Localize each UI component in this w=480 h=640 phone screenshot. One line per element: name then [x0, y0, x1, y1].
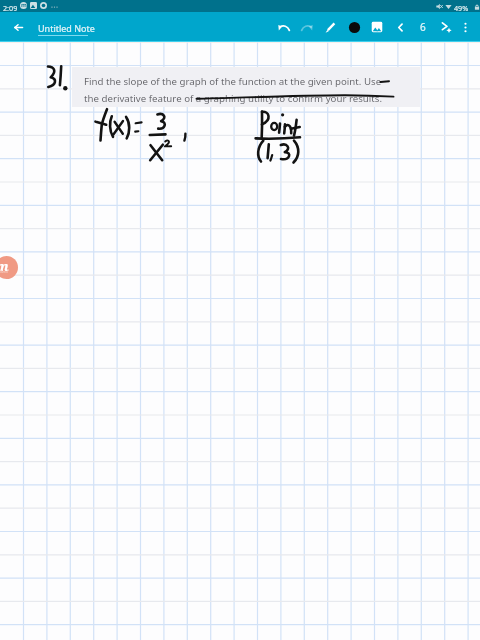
- staticText: Find the slope of the graph of the funct…: [84, 75, 382, 88]
- button[interactable]: Page 6: [412, 16, 434, 38]
- staticText: solved: [0, 269, 8, 274]
- button[interactable]: Previous page: [389, 16, 411, 38]
- button[interactable]: Redo: [296, 16, 318, 38]
- button[interactable]: Insert image: [366, 16, 388, 38]
- button[interactable]: Untitled Note: [38, 22, 95, 35]
- button[interactable]: Next page: [435, 16, 457, 38]
- staticText: m: [21, 2, 27, 8]
- staticText: Untitled Note: [38, 22, 95, 34]
- staticText: 6: [420, 20, 426, 34]
- button[interactable]: Back: [7, 16, 29, 38]
- staticText: the derivative feature of a graphing uti…: [84, 92, 383, 105]
- button[interactable]: More options: [454, 16, 476, 38]
- staticText: m: [0, 257, 9, 275]
- button[interactable]: Undo: [272, 16, 294, 38]
- button[interactable]: Pen: [319, 16, 341, 38]
- staticText: 49%: [454, 3, 469, 13]
- button[interactable]: Colour: [343, 16, 365, 38]
- staticText: 2:09: [3, 3, 18, 13]
